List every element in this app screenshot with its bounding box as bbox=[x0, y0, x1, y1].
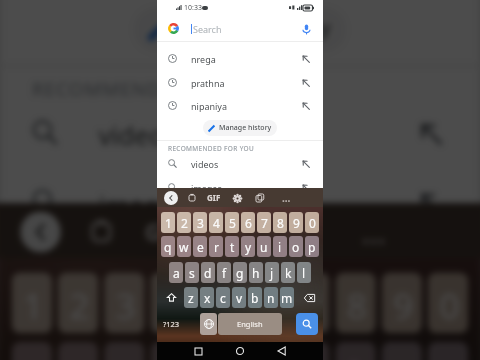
button[interactable]: prathna bbox=[157, 71, 323, 94]
button[interactable]: r bbox=[150, 342, 191, 360]
button[interactable]: 1 bbox=[12, 272, 52, 333]
button[interactable]: y bbox=[243, 342, 283, 360]
staticText: 6 bbox=[245, 215, 252, 231]
button[interactable]: c bbox=[216, 287, 230, 308]
button[interactable]: 6 bbox=[243, 272, 283, 333]
button[interactable]: ... bbox=[282, 191, 291, 205]
button[interactable]: o bbox=[382, 342, 422, 360]
button[interactable]: 3 bbox=[193, 212, 207, 233]
button[interactable]: y bbox=[241, 236, 255, 257]
button[interactable]: Recent apps bbox=[189, 342, 207, 360]
button[interactable]: Clipboard bbox=[185, 191, 199, 205]
button[interactable]: Settings bbox=[211, 212, 252, 252]
button[interactable]: Search bbox=[296, 313, 318, 335]
button[interactable]: w bbox=[58, 342, 98, 360]
button[interactable]: 2 bbox=[58, 272, 98, 333]
staticText: h bbox=[252, 265, 260, 281]
button[interactable]: 4 bbox=[150, 272, 191, 333]
button[interactable]: 0 bbox=[305, 212, 319, 233]
button[interactable]: e bbox=[104, 342, 145, 360]
button[interactable]: o bbox=[289, 236, 303, 257]
button[interactable]: 2 bbox=[177, 212, 191, 233]
button[interactable]: Stickers bbox=[278, 212, 318, 252]
staticText: images bbox=[98, 186, 188, 220]
button[interactable]: u bbox=[257, 236, 271, 257]
button[interactable]: f bbox=[217, 262, 231, 283]
button[interactable]: v bbox=[232, 287, 246, 308]
button[interactable]: k bbox=[281, 262, 295, 283]
button[interactable]: nipaniya bbox=[157, 94, 323, 117]
button[interactable]: p bbox=[305, 236, 319, 257]
button[interactable]: images bbox=[0, 168, 480, 235]
button[interactable]: 9 bbox=[289, 212, 303, 233]
staticText: 10:33 bbox=[184, 3, 202, 13]
button[interactable]: 8 bbox=[273, 212, 287, 233]
button[interactable]: x bbox=[200, 287, 214, 308]
staticText: GIF bbox=[145, 215, 185, 246]
button[interactable]: 6 bbox=[241, 212, 255, 233]
staticText: Manage history bbox=[219, 123, 272, 133]
button[interactable]: z bbox=[184, 287, 198, 308]
button[interactable]: Home bbox=[231, 342, 249, 360]
button[interactable]: u bbox=[289, 342, 330, 360]
button[interactable]: Manage history bbox=[203, 120, 277, 136]
button[interactable]: 7 bbox=[257, 212, 271, 233]
button[interactable]: j bbox=[265, 262, 279, 283]
button[interactable]: Close keyboard bar bbox=[164, 191, 178, 205]
button[interactable]: n bbox=[264, 287, 278, 308]
button[interactable]: 5 bbox=[197, 272, 237, 333]
button[interactable]: ... bbox=[361, 212, 387, 252]
button[interactable]: e bbox=[193, 236, 207, 257]
button[interactable]: Back bbox=[273, 342, 291, 360]
button[interactable]: English bbox=[218, 313, 282, 335]
button[interactable]: a bbox=[169, 262, 183, 283]
button[interactable]: images bbox=[157, 176, 323, 199]
button[interactable]: q bbox=[12, 342, 52, 360]
button[interactable]: p bbox=[428, 342, 468, 360]
button[interactable]: l bbox=[297, 262, 311, 283]
button[interactable]: g bbox=[233, 262, 247, 283]
button[interactable]: 3 bbox=[104, 272, 145, 333]
staticText: 4 bbox=[213, 215, 220, 231]
staticText: 2 bbox=[181, 215, 188, 231]
button[interactable]: d bbox=[201, 262, 215, 283]
button[interactable]: Settings bbox=[230, 191, 244, 205]
button[interactable]: videos bbox=[157, 152, 323, 175]
button[interactable]: i bbox=[273, 236, 287, 257]
button[interactable]: 1 bbox=[161, 212, 175, 233]
button[interactable]: r bbox=[209, 236, 223, 257]
button[interactable]: Change language bbox=[200, 313, 217, 335]
button[interactable]: 4 bbox=[209, 212, 223, 233]
button[interactable]: m bbox=[280, 287, 294, 308]
staticText: 0 bbox=[309, 215, 316, 231]
button[interactable]: Voice search bbox=[298, 21, 314, 37]
button[interactable]: s bbox=[185, 262, 199, 283]
button[interactable]: w bbox=[177, 236, 191, 257]
staticText: RECOMMENDED FOR YOU bbox=[32, 76, 283, 102]
button[interactable]: 8 bbox=[335, 272, 376, 333]
button[interactable]: videos bbox=[0, 99, 480, 166]
button[interactable]: q bbox=[161, 236, 175, 257]
button[interactable]: t bbox=[225, 236, 239, 257]
button[interactable]: t bbox=[197, 342, 237, 360]
button[interactable]: Clipboard bbox=[81, 212, 121, 252]
staticText: 6 bbox=[254, 281, 275, 327]
button[interactable]: Stickers bbox=[253, 191, 267, 205]
button[interactable]: Backspace bbox=[299, 287, 319, 308]
button[interactable]: b bbox=[248, 287, 262, 308]
staticText: l bbox=[302, 265, 306, 281]
staticText: c bbox=[220, 290, 226, 306]
button[interactable]: i bbox=[335, 342, 376, 360]
button[interactable]: ?123 bbox=[163, 319, 180, 329]
button[interactable]: h bbox=[249, 262, 263, 283]
button[interactable]: Manage history bbox=[133, 7, 347, 53]
button[interactable]: 0 bbox=[428, 272, 468, 333]
button[interactable]: Shift bbox=[161, 287, 181, 308]
button[interactable]: nrega bbox=[157, 47, 323, 70]
button[interactable]: 5 bbox=[225, 212, 239, 233]
button[interactable]: 7 bbox=[289, 272, 330, 333]
button[interactable]: Close keyboard bar bbox=[20, 212, 61, 252]
staticText: p bbox=[308, 239, 316, 255]
button[interactable]: 9 bbox=[382, 272, 422, 333]
